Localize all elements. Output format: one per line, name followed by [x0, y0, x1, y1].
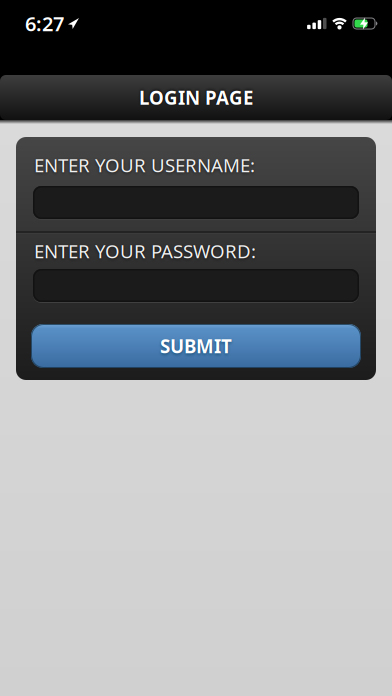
staticText: LOGIN PAGE — [139, 85, 253, 110]
staticText: 6:27 — [25, 10, 64, 37]
staticText: ENTER YOUR PASSWORD: — [34, 239, 256, 263]
staticText: SUBMIT — [160, 334, 232, 358]
button[interactable]: SUBMIT — [31, 324, 361, 368]
staticText: ENTER YOUR USERNAME: — [34, 153, 255, 177]
